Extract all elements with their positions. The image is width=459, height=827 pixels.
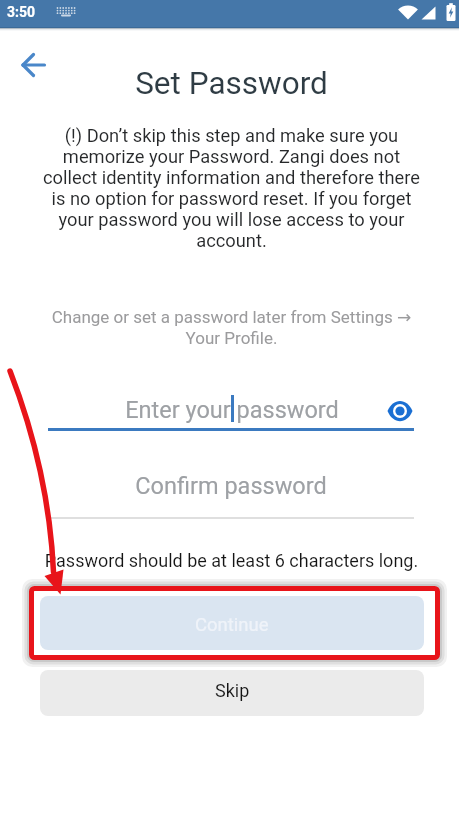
staticText: Skip <box>215 680 250 701</box>
staticText: 3:50 <box>7 4 36 20</box>
button[interactable]: Confirm password <box>48 468 414 508</box>
staticText: Continue <box>195 614 269 636</box>
button[interactable] <box>386 397 414 425</box>
staticText: Confirm password <box>48 472 414 500</box>
button[interactable]: Continue <box>40 596 424 650</box>
button[interactable]: Enter your password <box>48 388 414 428</box>
staticText: Password should be at least 6 characters… <box>2 550 459 571</box>
staticText: Set Password <box>2 65 459 102</box>
button[interactable]: Skip <box>40 670 424 716</box>
button[interactable] <box>16 49 52 81</box>
staticText: Change or set a password later from Sett… <box>2 307 459 348</box>
staticText: Enter your password <box>49 396 415 424</box>
staticText: (!) Don’t skip this step and make sure y… <box>2 125 459 251</box>
